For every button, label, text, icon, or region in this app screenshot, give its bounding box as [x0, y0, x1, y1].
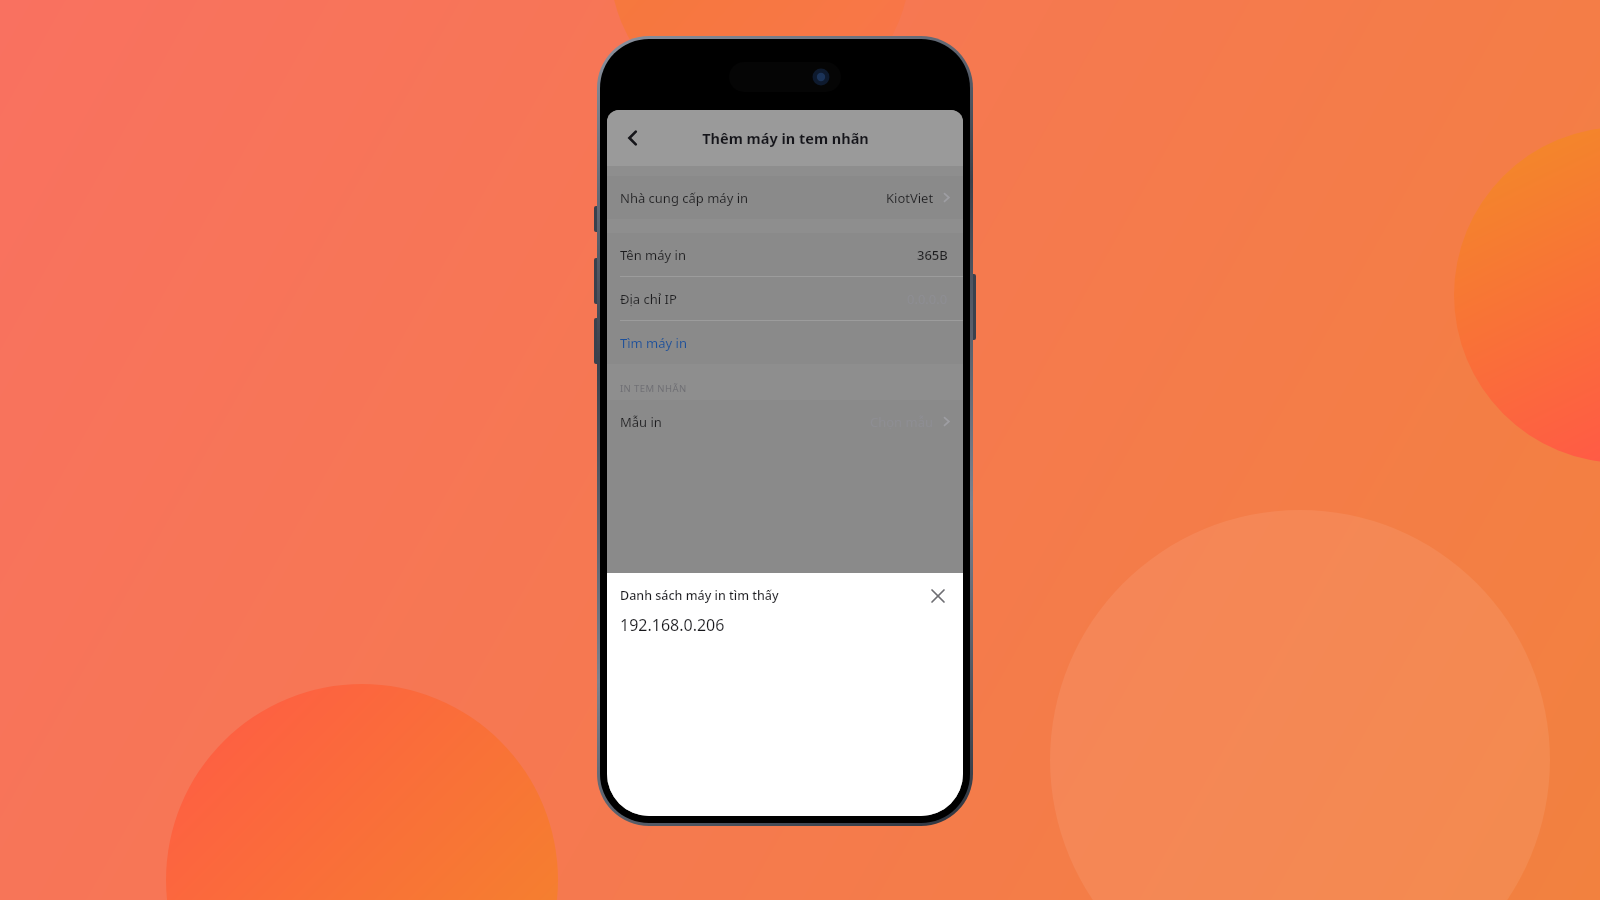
staticText: 365B [917, 246, 948, 264]
staticText: Tên máy in [620, 246, 686, 264]
button[interactable]: Địa chỉ IP [607, 277, 963, 320]
staticText: Nhà cung cấp máy in [620, 189, 749, 207]
button[interactable]: Mẫu in [607, 400, 963, 443]
staticText: KiotViet [886, 189, 934, 207]
button[interactable]: Nhà cung cấp máy in [607, 176, 963, 219]
button[interactable]: Close [921, 579, 955, 613]
button[interactable]: Tìm máy in [607, 321, 963, 364]
staticText: 192.168.0.206 [620, 614, 725, 636]
staticText: IN TEM NHÃN [620, 382, 687, 395]
button[interactable]: Back [611, 116, 655, 160]
staticText: Tìm máy in [620, 334, 687, 352]
button[interactable]: Tên máy in [607, 233, 963, 276]
staticText: Danh sách máy in tìm thấy [620, 587, 779, 604]
staticText: Mẫu in [620, 413, 662, 431]
button[interactable]: 192.168.0.206 [620, 614, 963, 636]
staticText: Địa chỉ IP [620, 290, 677, 308]
staticText: Thêm máy in tem nhãn [702, 128, 869, 148]
